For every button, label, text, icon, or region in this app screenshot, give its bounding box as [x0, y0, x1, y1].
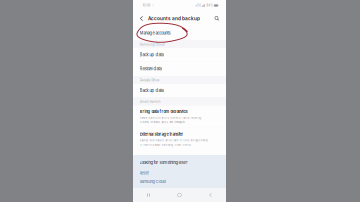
staticText: Back up data [139, 52, 163, 57]
button[interactable]: External storage transfer [133, 127, 226, 150]
button[interactable]: Manage accounts [133, 26, 226, 40]
staticText: Smart Switch [139, 99, 160, 103]
button[interactable]: Back [195, 188, 226, 202]
button[interactable]: Back [135, 11, 148, 26]
button[interactable]: Bring data from old device [133, 106, 226, 127]
staticText: ⠿ [152, 4, 154, 7]
staticText: Accounts and backup [148, 16, 200, 21]
button[interactable]: Reset [139, 171, 219, 175]
button[interactable]: Back up data [133, 84, 226, 97]
staticText: Bring data from old device [139, 109, 187, 114]
button[interactable]: Recent apps [133, 188, 164, 202]
staticText: 84% [206, 4, 213, 7]
staticText: Back up your data to an SD card or USB s… [139, 139, 208, 142]
staticText: or restore backup data using Smart Switc… [139, 143, 191, 146]
staticText: Samsung Cloud [139, 179, 165, 184]
staticText: 10:06 [142, 4, 150, 7]
button[interactable]: Home [164, 188, 195, 202]
staticText: Transfer data from an old phone or table… [139, 116, 201, 119]
staticText: 5G [197, 4, 201, 7]
staticText: Samsung Cloud [139, 42, 164, 46]
staticText: pictures, contacts, apps, and messages [139, 121, 184, 124]
staticText: Restore data [139, 66, 161, 71]
staticText: ◂ [195, 4, 196, 7]
staticText: Reset [139, 171, 148, 175]
button[interactable]: Search [210, 11, 223, 26]
staticText: Manage accounts [139, 30, 170, 35]
button[interactable]: Restore data [133, 61, 226, 76]
staticText: Back up data [139, 88, 163, 93]
staticText: Looking for something else? [139, 160, 187, 165]
staticText: Google Drive [139, 78, 159, 82]
button[interactable]: Samsung Cloud [139, 179, 219, 184]
staticText: External storage transfer [139, 132, 183, 137]
button[interactable]: Back up data [133, 48, 226, 61]
